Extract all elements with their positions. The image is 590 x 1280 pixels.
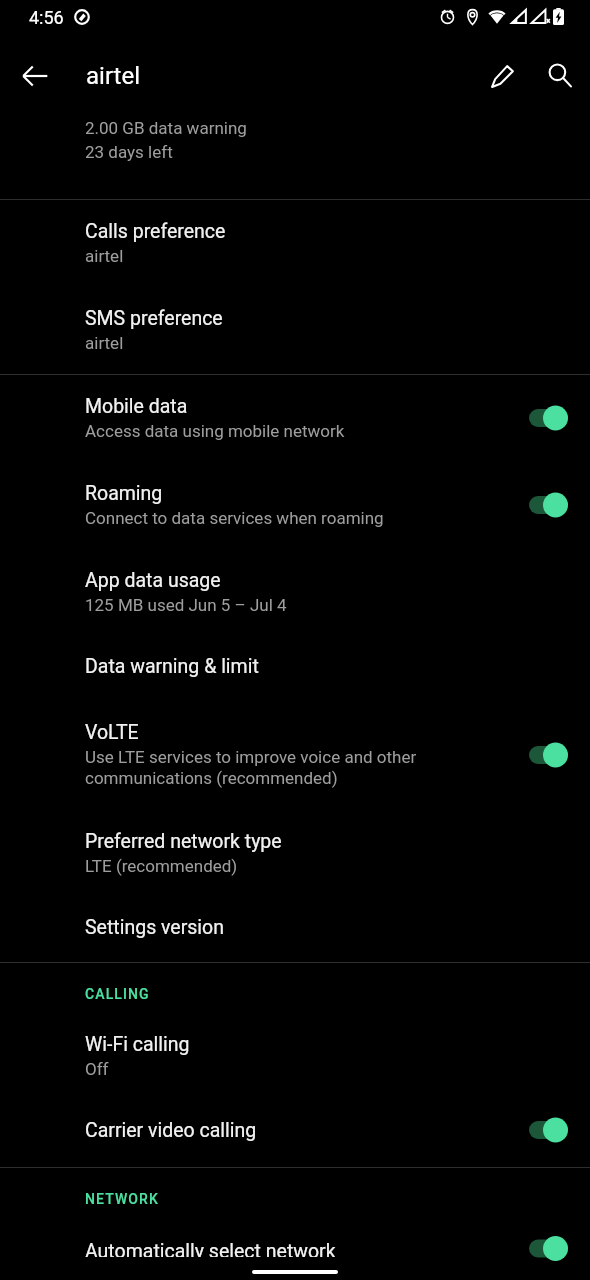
staticText: 2.00 GB data warning	[85, 118, 247, 138]
button[interactable]: Roaming	[0, 462, 590, 549]
staticText: 23 days left	[85, 142, 173, 162]
button[interactable]: Carrier video calling	[0, 1093, 590, 1167]
button[interactable]: App data usage	[0, 549, 590, 636]
button[interactable]: Data warning & limit	[0, 636, 590, 701]
button[interactable]: Wi-Fi calling	[0, 1016, 590, 1093]
staticText: Settings version	[85, 916, 225, 939]
staticText: Roaming	[85, 482, 163, 505]
staticText: SMS preference	[85, 307, 223, 330]
staticText: VoLTE	[85, 721, 139, 744]
staticText: 4:56	[29, 7, 64, 28]
staticText: Mobile data	[85, 395, 188, 418]
staticText: airtel	[85, 333, 124, 353]
staticText: 125 MB used Jun 5 – Jul 4	[85, 595, 287, 615]
button[interactable]: SMS preference	[0, 287, 590, 374]
staticText: Carrier video calling	[85, 1119, 257, 1142]
staticText: Automatically select network	[85, 1240, 336, 1257]
staticText: LTE (recommended)	[85, 856, 238, 876]
button[interactable]: Preferred network type	[0, 810, 590, 897]
button[interactable]: Settings version	[0, 897, 590, 962]
button[interactable]: Search	[532, 48, 588, 104]
button[interactable]: Mobile data	[0, 375, 590, 462]
staticText: Preferred network type	[85, 830, 282, 853]
staticText: airtel	[85, 246, 124, 266]
staticText: Connect to data services when roaming	[85, 508, 384, 528]
staticText: Calls preference	[85, 220, 226, 243]
staticText: Wi-Fi calling	[85, 1033, 190, 1056]
staticText: Off	[85, 1059, 109, 1079]
button[interactable]: Back	[7, 48, 63, 104]
staticText: airtel	[86, 62, 141, 90]
staticText: CALLING	[85, 986, 150, 1002]
button[interactable]: Calls preference	[0, 200, 590, 287]
button[interactable]: VoLTE	[0, 701, 590, 810]
staticText: Data warning & limit	[85, 655, 259, 678]
staticText: Access data using mobile network	[85, 421, 345, 441]
staticText: NETWORK	[85, 1191, 159, 1207]
button[interactable]: Automatically select network	[0, 1221, 590, 1280]
button[interactable]: Edit	[475, 48, 531, 104]
staticText: App data usage	[85, 569, 221, 592]
staticText: Use LTE services to improve voice and ot…	[85, 747, 417, 789]
